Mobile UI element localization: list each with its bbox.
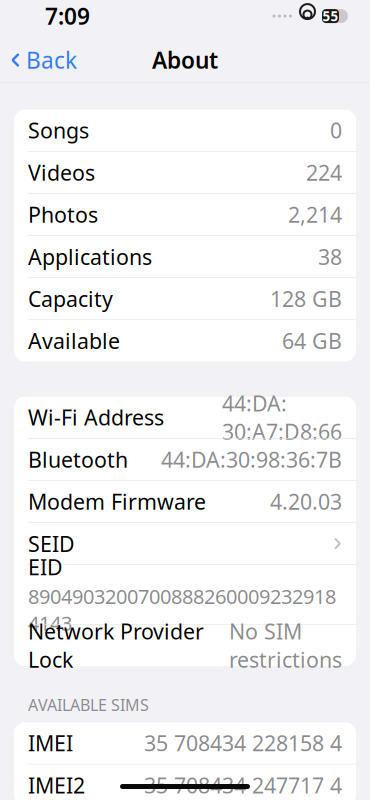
staticText: Songs (28, 116, 89, 144)
staticText: Modem Firmware (28, 487, 206, 516)
staticText: 4.20.03 (270, 487, 342, 516)
staticText: 128 GB (270, 285, 342, 313)
staticText: About (152, 45, 218, 75)
staticText: Wi-Fi Address (28, 403, 164, 431)
staticText: Videos (28, 158, 95, 187)
staticText: 89049032007008882600092329184143 (28, 583, 336, 636)
button[interactable]: Wi-Fi Address (14, 397, 356, 438)
staticText: 38 (318, 242, 342, 271)
button[interactable]: EID (14, 565, 356, 624)
staticText: 64 GB (282, 327, 342, 355)
button[interactable]: Applications (14, 236, 356, 277)
staticText: 7:09 (45, 1, 90, 31)
staticText: Capacity (28, 285, 113, 313)
staticText: IMEI2 (28, 771, 85, 799)
staticText: 55 (322, 7, 338, 25)
button[interactable]: Bluetooth (14, 439, 356, 480)
staticText: 0 (330, 116, 342, 144)
button[interactable]: Network Provider Lock (14, 625, 356, 666)
button[interactable]: IMEI2 (14, 764, 356, 800)
button[interactable]: Capacity (14, 278, 356, 319)
button[interactable]: Available (14, 320, 356, 362)
staticText: Back (26, 45, 77, 75)
button[interactable]: Back (0, 39, 85, 81)
button[interactable]: Photos (14, 194, 356, 235)
button[interactable]: Songs (14, 110, 356, 151)
staticText: Network Provider Lock (28, 617, 204, 674)
staticText: 44:DA:30:A7:D8:66 (222, 389, 342, 446)
staticText: 2,214 (288, 200, 342, 229)
staticText: Bluetooth (28, 445, 128, 474)
staticText: 44:DA:30:98:36:7B (161, 445, 342, 474)
staticText: SEID (28, 529, 75, 558)
staticText: EID (28, 553, 63, 581)
staticText: Photos (28, 200, 98, 229)
staticText: Available (28, 327, 120, 355)
button[interactable]: Videos (14, 152, 356, 193)
button[interactable]: Modem Firmware (14, 481, 356, 522)
staticText: 35 708434 247717 4 (144, 771, 342, 799)
staticText: No SIM restrictions (229, 617, 342, 674)
staticText: IMEI (28, 729, 73, 757)
staticText: 35 708434 228158 4 (144, 729, 342, 757)
staticText: AVAILABLE SIMS (28, 694, 149, 715)
button[interactable]: IMEI (14, 722, 356, 764)
staticText: 224 (306, 158, 342, 187)
staticText: Applications (28, 242, 152, 271)
button[interactable]: SEID (14, 523, 356, 564)
